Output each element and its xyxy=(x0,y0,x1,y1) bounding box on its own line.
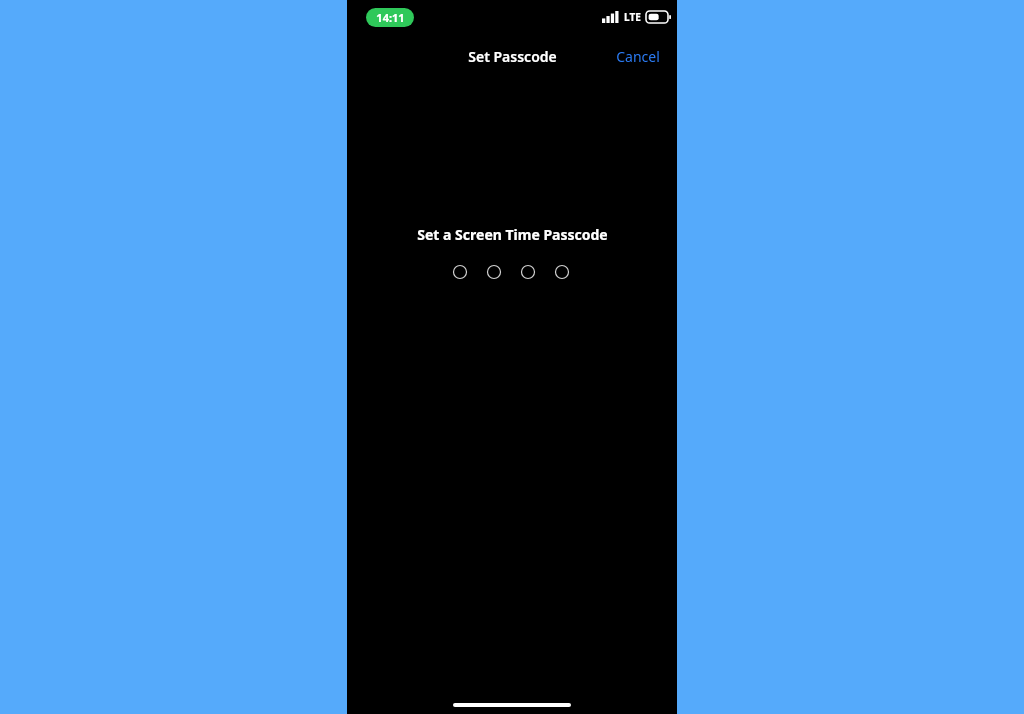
staticText: Set Passcode xyxy=(468,47,557,66)
staticText: Cancel xyxy=(616,47,660,66)
staticText: 14:11 xyxy=(376,10,405,25)
other: Home indicator xyxy=(453,703,571,707)
staticText: Set a Screen Time Passcode xyxy=(417,225,608,244)
staticText: LTE xyxy=(624,10,641,24)
button[interactable]: Cancel xyxy=(609,40,667,72)
